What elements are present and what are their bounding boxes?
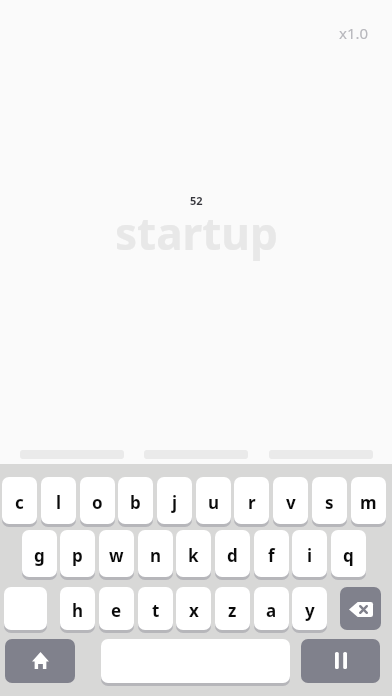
staticText: o [92,491,103,514]
button[interactable]: d [215,530,250,579]
staticText: i [307,544,313,567]
staticText: p [72,544,83,567]
button[interactable]: g [22,530,57,579]
staticText: e [111,599,122,622]
staticText: u [208,491,220,514]
button[interactable]: a [254,587,289,633]
staticText: x1.0 [339,23,369,43]
button[interactable]: c [2,477,37,526]
staticText: k [188,544,199,567]
staticText: j [172,491,178,514]
staticText: c [15,491,24,514]
staticText: h [72,599,84,622]
staticText: l [56,491,62,514]
staticText: 52 [190,193,203,208]
button[interactable]: Pause [301,639,380,685]
button[interactable]: t [138,587,173,633]
button[interactable]: Shift [4,587,47,633]
button[interactable]: y [292,587,327,633]
staticText: g [34,544,45,567]
staticText: r [248,491,256,514]
staticText: t [152,599,160,622]
button[interactable]: h [60,587,95,633]
staticText: b [130,491,141,514]
button[interactable]: o [80,477,115,526]
button[interactable]: q [331,530,366,579]
staticText: x [189,599,199,622]
button[interactable]: p [60,530,95,579]
button[interactable]: n [138,530,173,579]
button[interactable]: e [99,587,134,633]
button[interactable]: l [41,477,76,526]
button[interactable]: Space [101,639,290,685]
button[interactable]: v [273,477,308,526]
staticText: startup [115,203,278,263]
button[interactable]: w [99,530,134,579]
button[interactable]: j [157,477,192,526]
button[interactable]: x [176,587,211,633]
button[interactable]: Backspace [340,587,381,633]
button[interactable]: r [234,477,269,526]
staticText: z [228,599,237,622]
button[interactable]: m [351,477,386,526]
button[interactable]: k [176,530,211,579]
button[interactable]: f [254,530,289,579]
staticText: s [325,491,334,514]
staticText: q [343,544,354,567]
staticText: v [286,491,296,514]
button[interactable]: u [196,477,231,526]
staticText: y [305,599,315,622]
staticText: a [266,599,277,622]
button[interactable]: z [215,587,250,633]
button[interactable]: Home [5,639,75,685]
staticText: m [360,491,377,514]
button[interactable]: b [118,477,153,526]
button[interactable]: i [292,530,327,579]
button[interactable]: s [312,477,347,526]
staticText: n [150,544,162,567]
staticText: d [227,544,238,567]
staticText: f [268,544,275,567]
staticText: w [109,544,124,567]
